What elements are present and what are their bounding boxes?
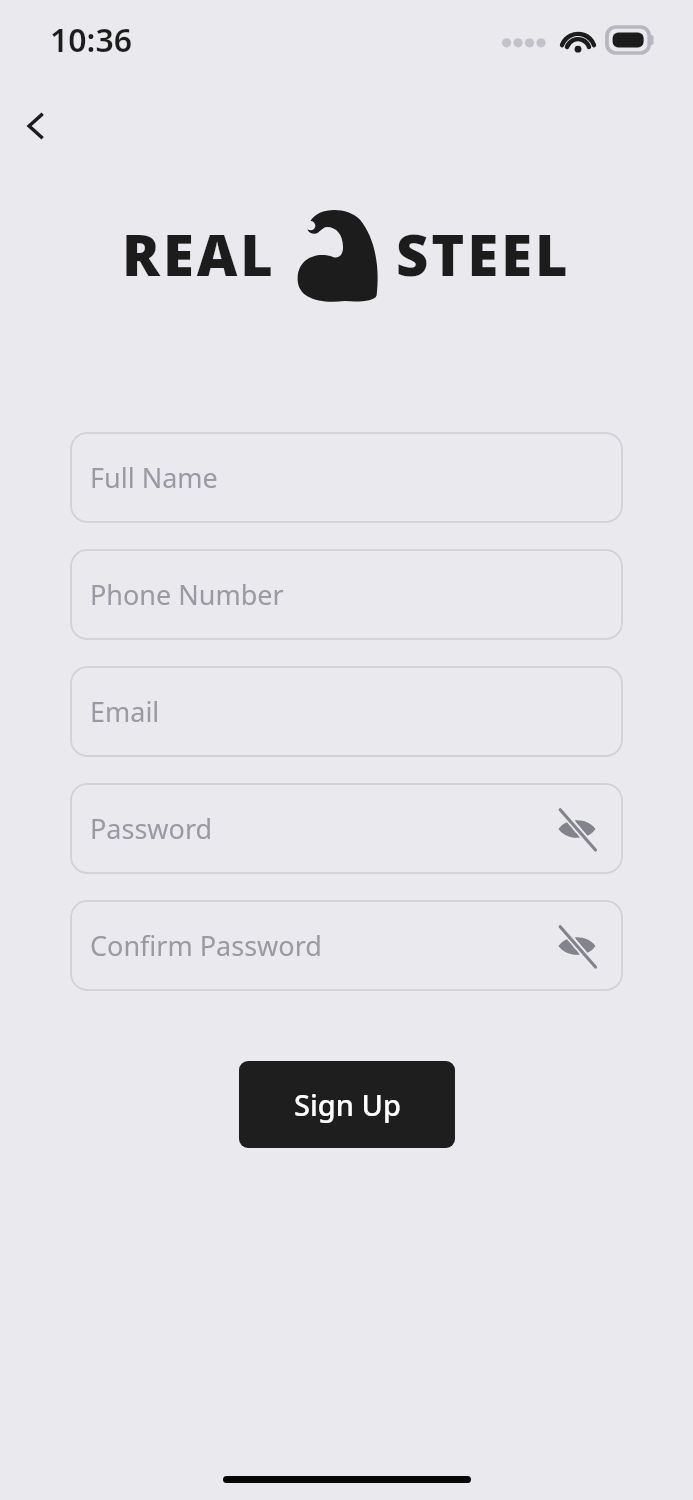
staticText: Phone Number <box>90 576 284 613</box>
button[interactable]: Toggle password visibility <box>553 922 601 970</box>
staticText: Full Name <box>90 459 218 496</box>
staticText: Email <box>90 693 160 730</box>
button[interactable]: Password <box>70 783 623 874</box>
staticText: STEEL <box>396 216 571 292</box>
staticText: Password <box>90 810 213 847</box>
button[interactable]: Sign Up <box>239 1061 455 1148</box>
button[interactable]: Toggle password visibility <box>553 805 601 853</box>
staticText: 10:36 <box>50 18 133 62</box>
button[interactable]: Confirm Password <box>70 900 623 991</box>
staticText: Confirm Password <box>90 927 322 964</box>
button[interactable]: Full Name <box>70 432 623 523</box>
button[interactable]: Email <box>70 666 623 757</box>
staticText: Sign Up <box>294 1085 401 1124</box>
button[interactable]: Back <box>6 96 66 156</box>
staticText: REAL <box>122 216 276 292</box>
button[interactable]: Phone Number <box>70 549 623 640</box>
